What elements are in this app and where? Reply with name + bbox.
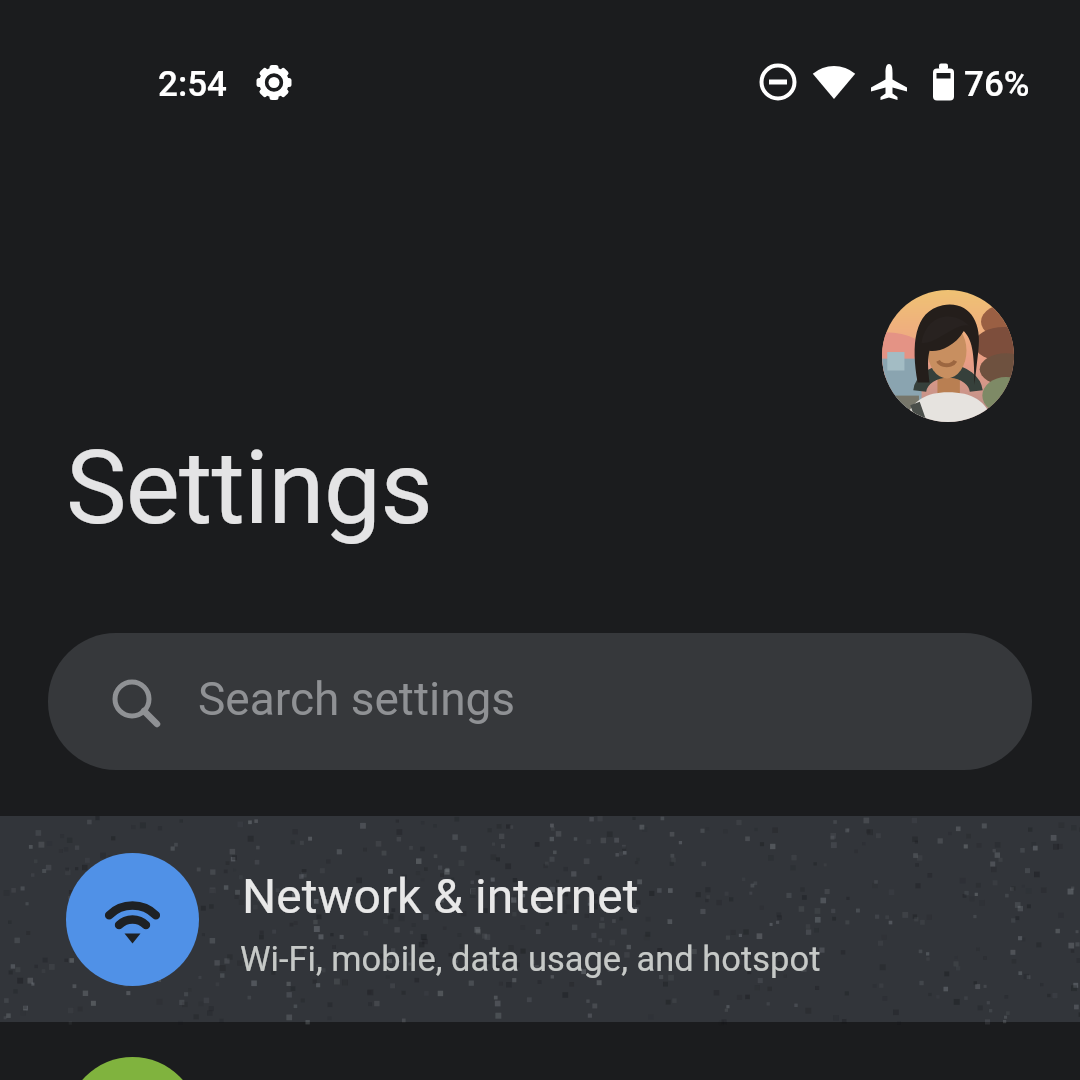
- button[interactable]: Search settings: [48, 633, 1032, 770]
- staticText: Wi-Fi, mobile, data usage, and hotspot: [240, 939, 821, 979]
- button[interactable]: Network & internet: [0, 816, 1080, 1022]
- button[interactable]: [882, 290, 1014, 422]
- staticText: Network & internet: [242, 868, 639, 924]
- staticText: Search settings: [198, 672, 516, 726]
- staticText: 76%: [964, 64, 1030, 105]
- staticText: 2:54: [158, 64, 227, 105]
- staticText: Settings: [66, 428, 433, 548]
